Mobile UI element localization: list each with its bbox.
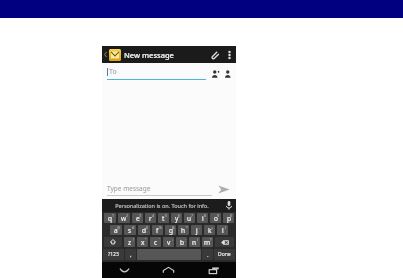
staticText: s (128, 226, 132, 235)
button[interactable]: Done (214, 249, 235, 260)
button[interactable]: w (118, 213, 130, 223)
button[interactable]: More options (223, 46, 236, 63)
staticText: i (202, 214, 204, 223)
staticText: To (109, 67, 117, 77)
staticText: h (181, 226, 186, 235)
staticText: 3 (139, 213, 142, 218)
button[interactable]: Type message (107, 184, 212, 196)
button[interactable]: n (189, 237, 200, 247)
button[interactable]: y (171, 213, 182, 223)
staticText: " (145, 237, 147, 242)
button[interactable]: s (124, 225, 136, 235)
staticText: d (142, 226, 146, 235)
staticText: % (159, 225, 162, 230)
staticText: ! (133, 237, 134, 242)
staticText: 9 (217, 213, 220, 218)
staticText: # (132, 225, 135, 230)
staticText: : (172, 237, 173, 242)
button[interactable]: Send (212, 180, 236, 199)
button[interactable]: t (158, 213, 169, 223)
staticText: 0 (230, 213, 233, 218)
staticText: , (130, 251, 132, 259)
staticText: / (197, 237, 199, 242)
staticText: New message (124, 50, 174, 60)
button[interactable]: g (165, 225, 176, 235)
button[interactable]: Hide keyboard (102, 262, 146, 278)
staticText: ' (159, 237, 160, 242)
staticText: g (169, 226, 173, 235)
button[interactable]: o (210, 213, 221, 223)
staticText: @ (117, 225, 121, 230)
staticText: e (136, 214, 140, 223)
staticText: y (175, 214, 179, 223)
staticText: $ (146, 225, 149, 230)
button[interactable]: Delete (215, 237, 234, 247)
button[interactable]: Voice input (221, 199, 236, 212)
button[interactable]: Choose contact (221, 67, 234, 80)
staticText: - (199, 225, 201, 230)
staticText: Type message (107, 184, 151, 193)
staticText: 6 (178, 213, 181, 218)
staticText: & (172, 225, 175, 230)
staticText: 2 (126, 213, 129, 218)
staticText: 8 (204, 213, 207, 218)
button[interactable]: ?123 (103, 249, 124, 260)
staticText: b (180, 238, 184, 247)
staticText: k (208, 226, 212, 235)
staticText: ; (185, 237, 186, 242)
button[interactable]: b (176, 237, 187, 247)
staticText: j (196, 226, 198, 235)
staticText: 7 (191, 213, 194, 218)
staticText: + (211, 225, 214, 230)
button[interactable]: m (202, 237, 213, 247)
button[interactable]: i (197, 213, 208, 223)
button[interactable]: . (202, 249, 213, 260)
staticText: z (128, 238, 132, 247)
staticText: x (141, 238, 145, 247)
staticText: 1 (112, 213, 115, 218)
staticText: u (187, 214, 192, 223)
button[interactable]: Add recipient (208, 67, 221, 80)
button[interactable]: Recent apps (191, 262, 236, 278)
staticText: o (214, 214, 218, 223)
button[interactable]: q (104, 213, 116, 223)
button[interactable]: u (184, 213, 195, 223)
button[interactable]: v (163, 237, 174, 247)
button[interactable]: d (138, 225, 150, 235)
button[interactable]: Navigate up (102, 46, 122, 63)
staticText: Personalization is on. Touch for info. (115, 202, 209, 209)
staticText: a (114, 226, 118, 235)
button[interactable]: k (204, 225, 215, 235)
button[interactable]: x (137, 237, 148, 247)
staticText: 4 (152, 213, 155, 218)
staticText: w (121, 214, 127, 223)
staticText: v (167, 238, 171, 247)
button[interactable]: Shift (104, 237, 122, 247)
staticText: n (192, 238, 197, 247)
staticText: t (162, 214, 165, 223)
staticText: ? (210, 237, 212, 242)
button[interactable]: l (217, 225, 228, 235)
button[interactable]: Attach (206, 46, 223, 63)
button[interactable]: e (132, 213, 143, 223)
button[interactable]: , (125, 249, 136, 260)
button[interactable]: h (178, 225, 189, 235)
staticText: ( (225, 225, 227, 230)
button[interactable]: r (145, 213, 156, 223)
button[interactable]: a (110, 225, 122, 235)
staticText: ?123 (108, 251, 119, 258)
staticText: 5 (165, 213, 168, 218)
staticText: f (156, 226, 159, 235)
button[interactable]: z (124, 237, 135, 247)
button[interactable]: Personalization is on. Touch for info. (102, 199, 221, 212)
button[interactable]: f (152, 225, 163, 235)
staticText: Done (218, 251, 231, 258)
button[interactable]: Home (146, 262, 191, 278)
button[interactable]: c (150, 237, 161, 247)
button[interactable]: j (191, 225, 202, 235)
button[interactable]: To (107, 67, 206, 80)
staticText: m (204, 238, 211, 247)
button[interactable]: p (223, 213, 234, 223)
staticText: r (149, 214, 152, 223)
